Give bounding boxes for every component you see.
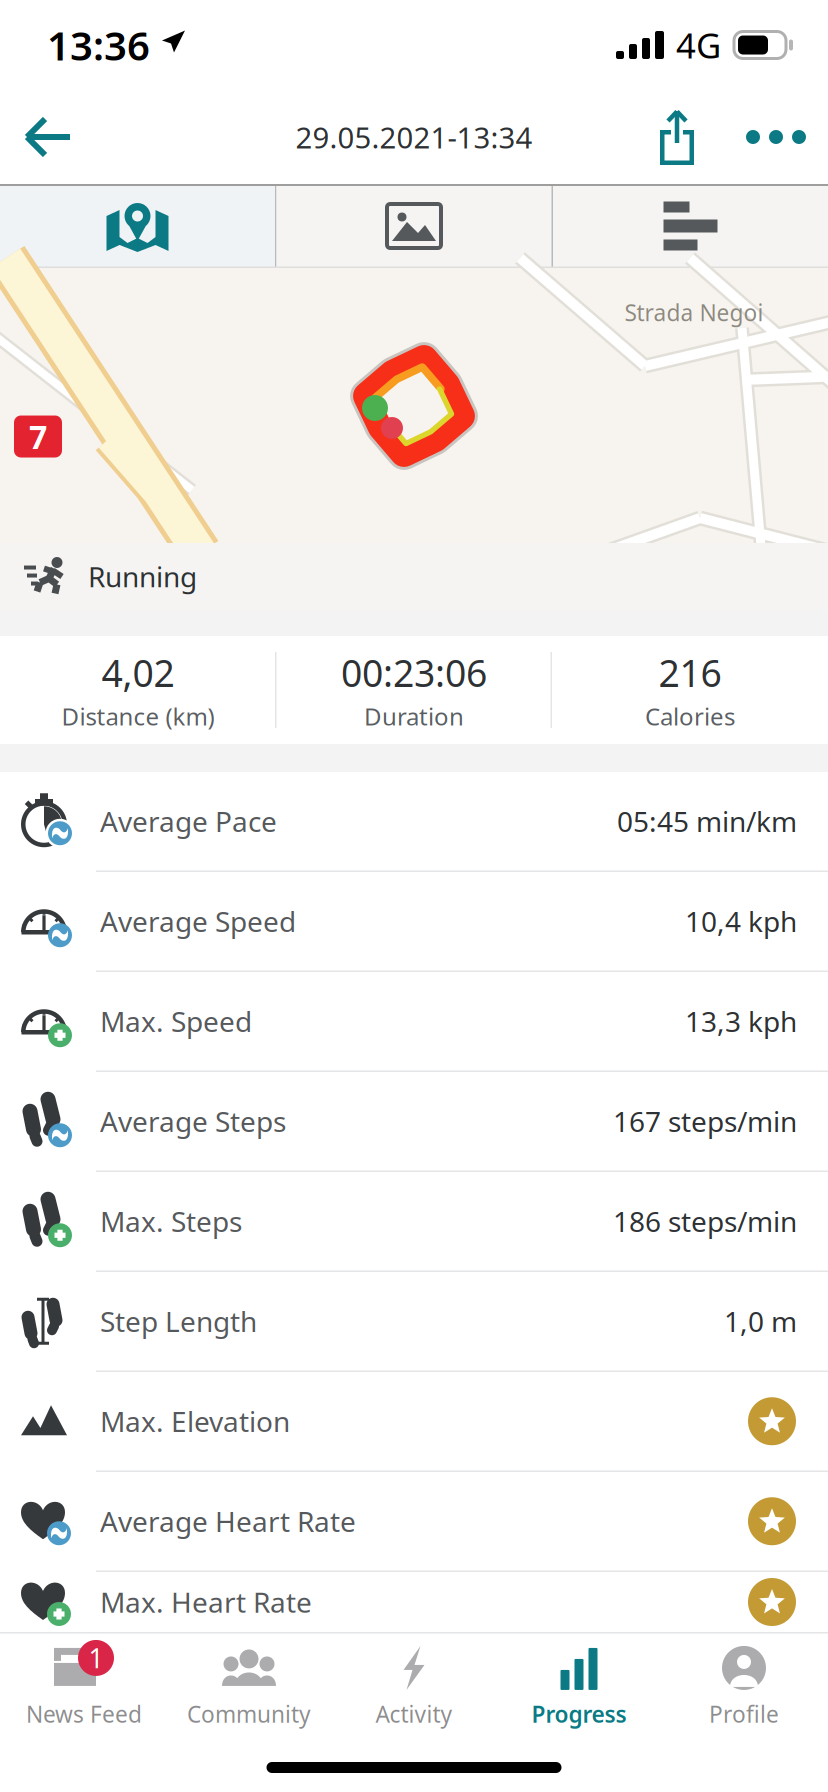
button[interactable]: Average Steps xyxy=(0,1072,828,1172)
button[interactable]: Average Speed xyxy=(0,872,828,972)
staticText: Max. Speed xyxy=(100,1003,252,1040)
button[interactable]: 1 xyxy=(1,1640,166,1734)
staticText: 216 xyxy=(658,648,721,697)
staticText: 186 steps/min xyxy=(613,1203,797,1240)
staticText: Running xyxy=(88,558,197,595)
staticText: Duration xyxy=(364,700,464,732)
button[interactable]: Community xyxy=(166,1640,331,1734)
staticText: Profile xyxy=(709,1699,779,1729)
staticText: Max. Elevation xyxy=(100,1403,290,1440)
staticText: Distance (km) xyxy=(61,700,214,732)
button[interactable]: Progress xyxy=(496,1640,661,1734)
staticText: 00:23:06 xyxy=(341,648,487,697)
staticText: 29.05.2021-13:34 xyxy=(295,117,532,156)
staticText: 05:45 min/km xyxy=(617,803,797,840)
staticText: News Feed xyxy=(26,1699,142,1729)
staticText: Calories xyxy=(645,700,735,732)
staticText: Activity xyxy=(375,1699,452,1729)
button[interactable]: Share xyxy=(636,91,718,183)
staticText: Average Pace xyxy=(100,803,277,840)
button[interactable]: Profile xyxy=(661,1640,826,1734)
button[interactable]: Max. Heart Rate xyxy=(0,1572,828,1632)
staticText: 13:36 xyxy=(47,18,150,71)
staticText: 4G xyxy=(676,22,721,68)
button[interactable]: Map xyxy=(0,184,275,268)
staticText: 1 xyxy=(88,1640,103,1676)
button[interactable]: Average Pace xyxy=(0,772,828,872)
button[interactable]: Max. Speed xyxy=(0,972,828,1072)
staticText: Progress xyxy=(531,1699,626,1729)
staticText: 1,0 m xyxy=(724,1303,797,1340)
staticText: 167 steps/min xyxy=(613,1103,797,1140)
button[interactable]: Statistics xyxy=(553,184,828,268)
staticText: Max. Steps xyxy=(100,1203,242,1240)
staticText: 10,4 kph xyxy=(685,903,797,940)
staticText: Community xyxy=(187,1699,311,1729)
staticText: Strada Negoi xyxy=(624,297,763,327)
button[interactable]: Max. Steps xyxy=(0,1172,828,1272)
staticText: Average Heart Rate xyxy=(100,1503,356,1540)
button[interactable]: Max. Elevation xyxy=(0,1372,828,1472)
button[interactable]: Activity xyxy=(331,1640,496,1734)
staticText: Max. Heart Rate xyxy=(100,1583,312,1621)
staticText: 4,02 xyxy=(101,648,174,697)
button[interactable]: More options xyxy=(718,91,828,183)
staticText: Step Length xyxy=(100,1303,257,1340)
staticText: Average Steps xyxy=(100,1103,286,1140)
button[interactable]: Back xyxy=(0,91,92,183)
button[interactable]: Step Length xyxy=(0,1272,828,1372)
staticText: 13,3 kph xyxy=(685,1003,797,1040)
staticText: Average Speed xyxy=(100,903,296,940)
button[interactable]: Average Heart Rate xyxy=(0,1472,828,1572)
button[interactable]: Photos xyxy=(276,184,551,268)
staticText: 7 xyxy=(29,415,47,458)
